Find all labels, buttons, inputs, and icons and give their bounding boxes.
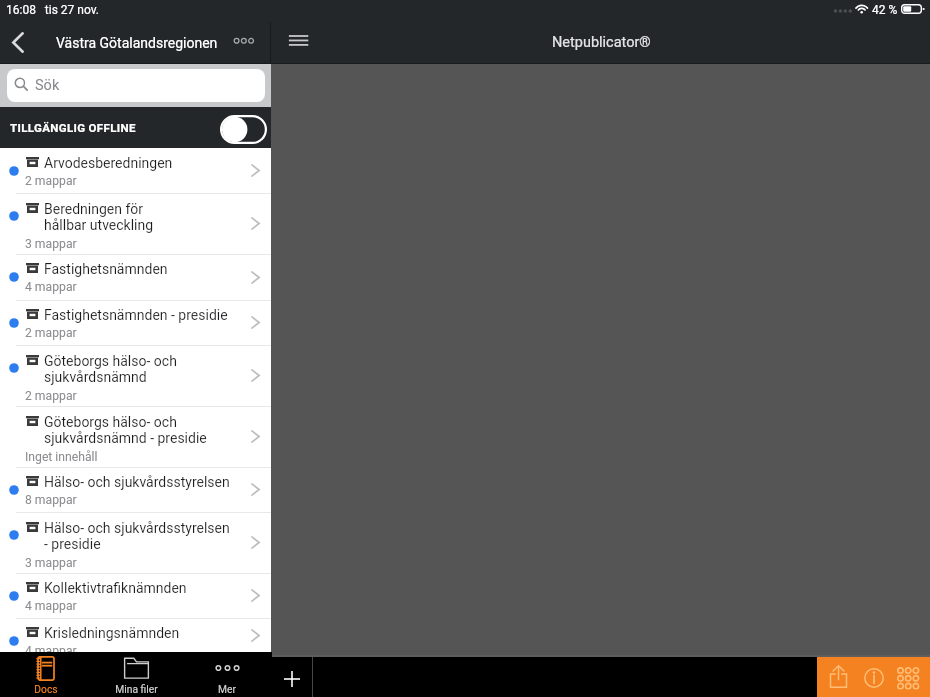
staticText: - presidie xyxy=(44,536,101,552)
staticText: Krisledningsnämnden xyxy=(44,625,180,641)
button[interactable]: Add xyxy=(272,657,312,697)
button[interactable]: Docs xyxy=(0,656,91,697)
button[interactable]: Back xyxy=(2,26,34,60)
staticText: 42 % xyxy=(872,3,898,17)
staticText: TILLGÄNGLIG OFFLINE xyxy=(10,121,136,134)
button[interactable]: Krisledningsnämnden xyxy=(0,618,271,652)
button[interactable]: Mina filer xyxy=(91,656,182,697)
button[interactable]: Fastighetsnämnden - presidie xyxy=(0,300,271,345)
button[interactable]: Sök xyxy=(7,69,265,102)
button[interactable]: Menu xyxy=(285,27,315,57)
button[interactable]: Share xyxy=(823,657,861,697)
button[interactable]: Info xyxy=(861,657,897,697)
staticText: 3 mappar xyxy=(25,237,77,251)
button[interactable]: Arvodesberedningen xyxy=(0,148,271,193)
staticText: Inget innehåll xyxy=(25,450,98,464)
staticText: Netpublicator® xyxy=(552,34,651,51)
staticText: Mina filer xyxy=(115,683,158,695)
staticText: Göteborgs hälso- och xyxy=(44,414,177,430)
staticText: Hälso- och sjukvårdsstyrelsen xyxy=(44,474,230,490)
staticText: Sök xyxy=(35,77,60,94)
staticText: Fastighetsnämnden xyxy=(44,261,168,277)
button[interactable]: Apps xyxy=(897,657,930,697)
staticText: Hälso- och sjukvårdsstyrelsen xyxy=(44,520,230,536)
button[interactable]: Göteborgs hälso- och xyxy=(0,345,271,406)
staticText: 3 mappar xyxy=(25,556,77,570)
staticText: sjukvårdsnämnd xyxy=(44,369,147,385)
staticText: Västra Götalandsregionen xyxy=(56,35,218,51)
button[interactable]: Kollektivtrafiknämnden xyxy=(0,573,271,618)
staticText: 4 mappar xyxy=(25,644,77,658)
staticText: sjukvårdsnämnd - presidie xyxy=(44,430,207,446)
button[interactable]: Beredningen för xyxy=(0,193,271,254)
staticText: Arvodesberedningen xyxy=(44,155,173,171)
button[interactable]: Mer xyxy=(182,656,272,697)
button[interactable]: Fastighetsnämnden xyxy=(0,254,271,300)
button[interactable]: Göteborgs hälso- och xyxy=(0,406,271,467)
button[interactable]: More options xyxy=(228,29,256,57)
staticText: Göteborgs hälso- och xyxy=(44,353,177,369)
staticText: 2 mappar xyxy=(25,389,77,403)
staticText: 4 mappar xyxy=(25,599,77,613)
button[interactable]: Available offline toggle xyxy=(220,115,267,144)
staticText: Kollektivtrafiknämnden xyxy=(44,580,187,596)
staticText: 2 mappar xyxy=(25,174,77,188)
staticText: 4 mappar xyxy=(25,280,77,294)
staticText: hållbar utveckling xyxy=(44,217,154,233)
staticText: Beredningen för xyxy=(44,201,144,217)
button[interactable]: Hälso- och sjukvårdsstyrelsen xyxy=(0,512,271,573)
staticText: 8 mappar xyxy=(25,493,77,507)
staticText: Mer xyxy=(218,683,236,695)
staticText: 16:08 tis 27 nov. xyxy=(6,3,100,17)
staticText: 2 mappar xyxy=(25,326,77,340)
staticText: Fastighetsnämnden - presidie xyxy=(44,307,228,323)
staticText: Docs xyxy=(34,683,58,695)
button[interactable]: Hälso- och sjukvårdsstyrelsen xyxy=(0,467,271,512)
